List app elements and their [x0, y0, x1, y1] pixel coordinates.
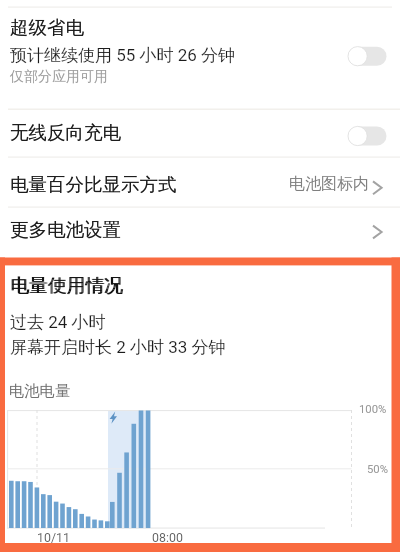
staticText: 电池电量 [9, 381, 71, 400]
staticText: 屏幕开启时长 2 小时 33 分钟 [10, 337, 226, 358]
button[interactable] [0, 158, 400, 207]
button[interactable] [0, 7, 400, 109]
staticText: 100% [359, 403, 387, 416]
button[interactable] [346, 124, 388, 148]
staticText: 更多电池设置 [10, 218, 121, 241]
staticText: 超级省电 [10, 16, 84, 39]
button[interactable] [0, 208, 400, 253]
button[interactable] [0, 110, 400, 157]
staticText: 08:00 [152, 530, 183, 545]
staticText: 超级省电 [10, 16, 84, 39]
button[interactable] [346, 44, 388, 68]
staticText: 电量使用情况 [11, 274, 124, 298]
staticText: 仅部分应用可用 [10, 68, 108, 86]
staticText: 更多电池设置 [10, 218, 121, 241]
staticText: 无线反向充电 [10, 121, 121, 144]
staticText: 10/11 [37, 530, 70, 545]
staticText: 50% [367, 463, 388, 476]
staticText: 无线反向充电 [10, 121, 121, 144]
staticText: 电池图标内 [289, 174, 369, 194]
staticText: 预计继续使用 55 小时 26 分钟 [10, 45, 236, 66]
staticText: 过去 24 小时 [10, 312, 106, 333]
staticText: 电量百分比显示方式 [10, 173, 177, 196]
staticText: 电量使用情况 [10, 274, 123, 298]
staticText: 电量百分比显示方式 [10, 173, 177, 196]
